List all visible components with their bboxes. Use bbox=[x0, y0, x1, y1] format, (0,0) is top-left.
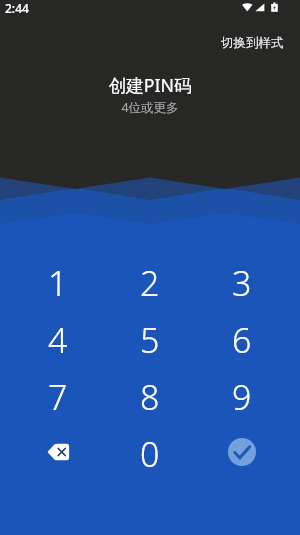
staticText: 创建PIN码 bbox=[108, 73, 192, 97]
staticText: 1 bbox=[48, 260, 68, 306]
staticText: 4位或更多 bbox=[121, 99, 179, 116]
button[interactable]: 3 bbox=[196, 254, 288, 311]
button[interactable]: 1 bbox=[12, 254, 104, 311]
button[interactable]: 切换到样式 bbox=[205, 29, 300, 57]
staticText: 6 bbox=[232, 317, 252, 363]
staticText: 0 bbox=[140, 431, 160, 477]
staticText: 4 bbox=[48, 317, 68, 363]
staticText: 2 bbox=[140, 260, 160, 306]
staticText: 切换到样式 bbox=[221, 35, 284, 51]
staticText: 2:44 bbox=[5, 0, 29, 16]
button[interactable]: Confirm bbox=[196, 425, 288, 482]
staticText: 7 bbox=[48, 374, 68, 420]
button[interactable]: 8 bbox=[104, 368, 196, 425]
button[interactable]: 4 bbox=[12, 311, 104, 368]
button[interactable]: 2 bbox=[104, 254, 196, 311]
button[interactable]: 7 bbox=[12, 368, 104, 425]
staticText: 8 bbox=[140, 374, 160, 420]
button[interactable]: 6 bbox=[196, 311, 288, 368]
button[interactable]: 9 bbox=[196, 368, 288, 425]
staticText: 9 bbox=[232, 374, 252, 420]
staticText: 3 bbox=[232, 260, 252, 306]
button[interactable]: 5 bbox=[104, 311, 196, 368]
button[interactable]: 0 bbox=[104, 425, 196, 482]
staticText: 5 bbox=[140, 317, 160, 363]
button[interactable]: Delete bbox=[12, 425, 104, 482]
